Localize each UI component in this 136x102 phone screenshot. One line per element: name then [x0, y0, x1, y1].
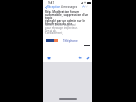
- button[interactable]: Archive: [47, 56, 51, 60]
- button[interactable]: Réception: [45, 5, 61, 9]
- button[interactable]: Next message: [85, 5, 88, 8]
- staticText: Rép. Modération forum automobile, suppre…: [45, 10, 90, 26]
- staticText: 9:41: [48, 1, 55, 5]
- staticText: 4 messages: [61, 5, 78, 9]
- button[interactable]: Compose: [86, 56, 90, 60]
- button[interactable]: Reply: [78, 56, 82, 60]
- staticText: Cordialement,: [45, 31, 63, 35]
- staticText: Téléphone: [63, 39, 78, 43]
- staticText: Réception: [47, 5, 61, 9]
- button[interactable]: Previous message: [82, 5, 85, 8]
- staticText: Merci. J'ai bien supprimé pour message i…: [45, 23, 79, 33]
